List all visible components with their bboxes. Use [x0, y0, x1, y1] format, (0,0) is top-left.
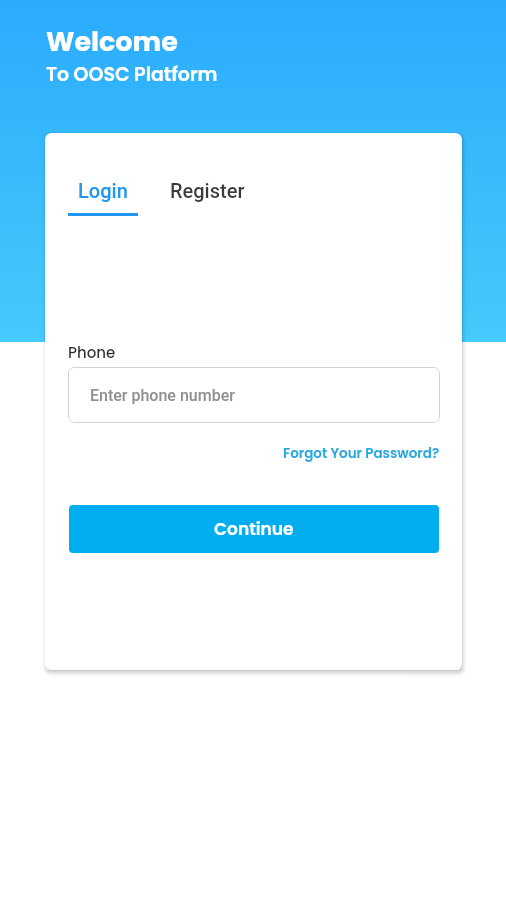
staticText: Welcome	[46, 23, 178, 61]
button[interactable]: Forgot Your Password?	[283, 444, 440, 463]
staticText: Phone	[68, 342, 116, 363]
staticText: Enter phone number	[90, 386, 235, 405]
staticText: Continue	[214, 517, 294, 541]
button[interactable]: Enter phone number	[68, 367, 440, 423]
staticText: Login	[78, 179, 128, 202]
button[interactable]: Login	[69, 177, 137, 204]
staticText: Register	[170, 179, 245, 202]
staticText: To OOSC Platform	[46, 61, 218, 88]
button[interactable]: Continue	[69, 505, 439, 553]
button[interactable]: Register	[168, 177, 247, 204]
